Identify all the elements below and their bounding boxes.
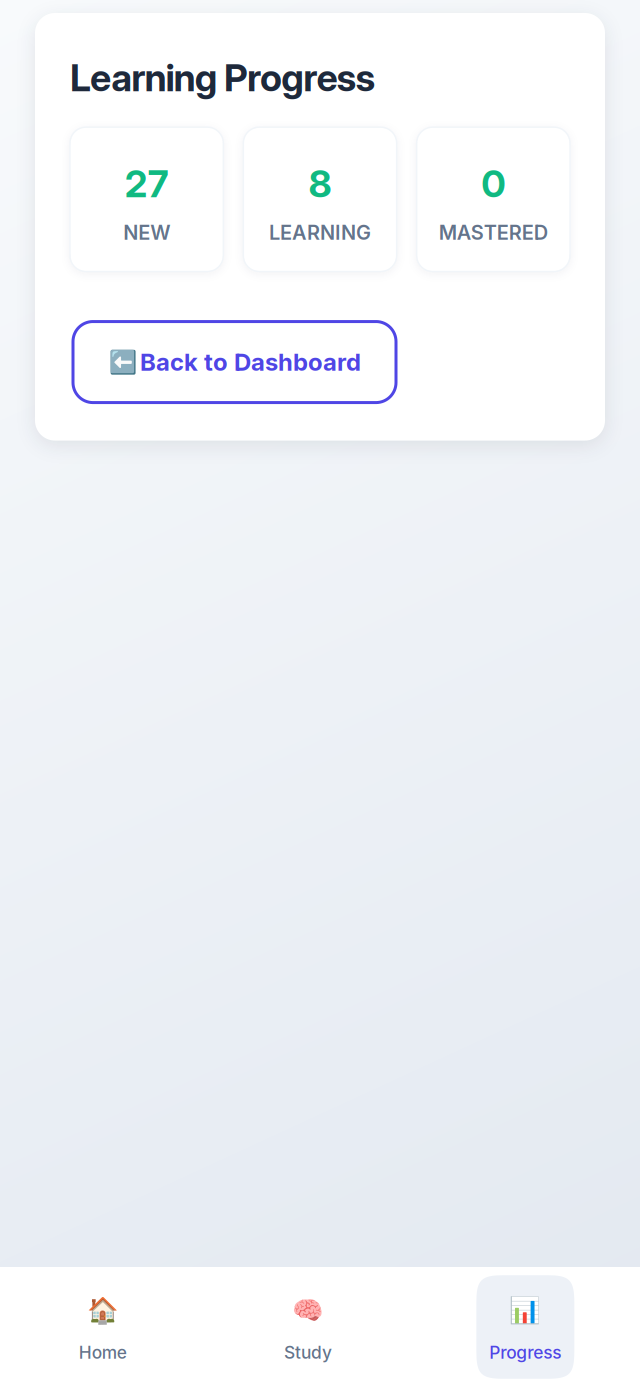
button[interactable]: 📊 bbox=[476, 1275, 574, 1379]
staticText: Learning Progress bbox=[70, 55, 376, 100]
staticText: 0 bbox=[481, 161, 505, 206]
staticText: Home bbox=[79, 1342, 127, 1363]
staticText: 🏠 bbox=[87, 1295, 119, 1325]
staticText: Progress bbox=[489, 1342, 561, 1363]
button[interactable]: 🏠 bbox=[66, 1275, 140, 1379]
staticText: ⬅️ bbox=[109, 349, 137, 375]
staticText: 🧠 bbox=[292, 1295, 324, 1325]
staticText: MASTERED bbox=[439, 220, 548, 244]
button[interactable]: ⬅️ bbox=[73, 321, 396, 402]
staticText: 27 bbox=[125, 161, 169, 206]
staticText: LEARNING bbox=[269, 220, 371, 244]
button[interactable]: 🧠 bbox=[271, 1275, 345, 1379]
staticText: Back to Dashboard bbox=[140, 347, 361, 376]
staticText: 8 bbox=[308, 161, 331, 206]
staticText: NEW bbox=[123, 220, 170, 244]
staticText: Study bbox=[284, 1342, 332, 1363]
staticText: 📊 bbox=[509, 1295, 541, 1325]
